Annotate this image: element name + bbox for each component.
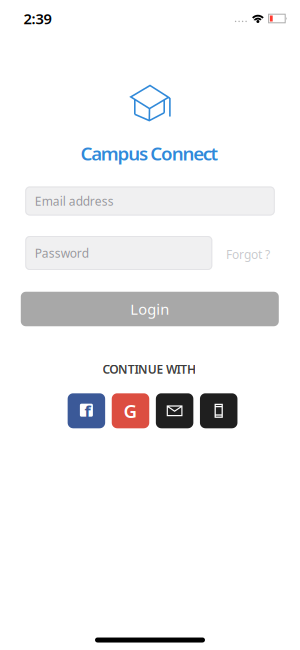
- button[interactable]: Login: [21, 292, 279, 326]
- button[interactable]: Forgot ?: [226, 246, 270, 262]
- button[interactable]: Password: [25, 236, 212, 270]
- button[interactable]: Continue with Facebook: [68, 393, 105, 428]
- staticText: f: [85, 401, 91, 422]
- staticText: Forgot ?: [226, 246, 270, 262]
- button[interactable]: Continue with Email: [156, 393, 193, 428]
- button[interactable]: Continue with Phone: [200, 393, 237, 428]
- staticText: G: [123, 398, 137, 423]
- staticText: Password: [35, 245, 89, 261]
- staticText: Email address: [35, 193, 114, 209]
- staticText: Login: [130, 299, 169, 319]
- staticText: Campus Connect: [80, 141, 218, 166]
- button[interactable]: Continue with Google: [112, 393, 149, 428]
- staticText: CONTINUE WITH: [103, 361, 196, 377]
- button[interactable]: Email address: [25, 186, 275, 215]
- staticText: 2:39: [23, 9, 51, 28]
